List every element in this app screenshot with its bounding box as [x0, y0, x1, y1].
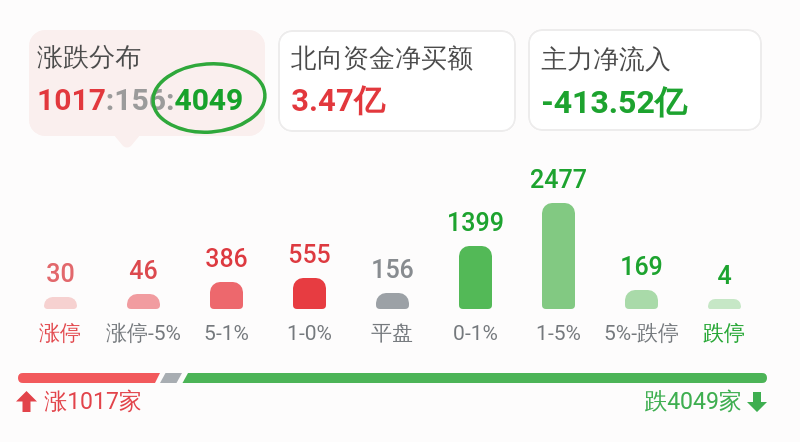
staticText: 4	[717, 261, 732, 290]
staticText: 涨跌分布	[37, 41, 141, 74]
staticText: 169	[620, 252, 663, 281]
staticText: 平盘	[371, 320, 413, 346]
button[interactable]: 北向资金净买额	[278, 30, 516, 132]
staticText: 555	[288, 240, 331, 269]
staticText: 3.47亿	[291, 81, 385, 120]
staticText: 1017:156:4049	[37, 82, 244, 117]
staticText: 5%-跌停	[604, 320, 679, 346]
staticText: 386	[205, 244, 248, 273]
staticText: 涨1017家	[44, 387, 142, 416]
staticText: 1-5%	[536, 321, 581, 346]
staticText: 涨停	[39, 320, 81, 346]
staticText: 156	[371, 255, 414, 284]
button[interactable]: 主力净流入	[528, 29, 762, 131]
staticText: 跌4049家	[644, 387, 742, 416]
staticText: 主力净流入	[541, 43, 671, 76]
staticText: 30	[46, 259, 75, 288]
staticText: 1-0%	[287, 321, 332, 346]
staticText: 涨停-5%	[106, 320, 181, 346]
staticText: 1399	[447, 208, 504, 237]
staticText: 5-1%	[204, 321, 249, 346]
staticText: 跌停	[703, 320, 745, 346]
staticText: -413.52亿	[541, 82, 687, 122]
staticText: 北向资金净买额	[291, 42, 473, 75]
staticText: 0-1%	[453, 321, 498, 346]
staticText: 2477	[530, 165, 587, 194]
button[interactable]: 涨跌分布	[29, 30, 265, 136]
staticText: 46	[129, 256, 158, 285]
